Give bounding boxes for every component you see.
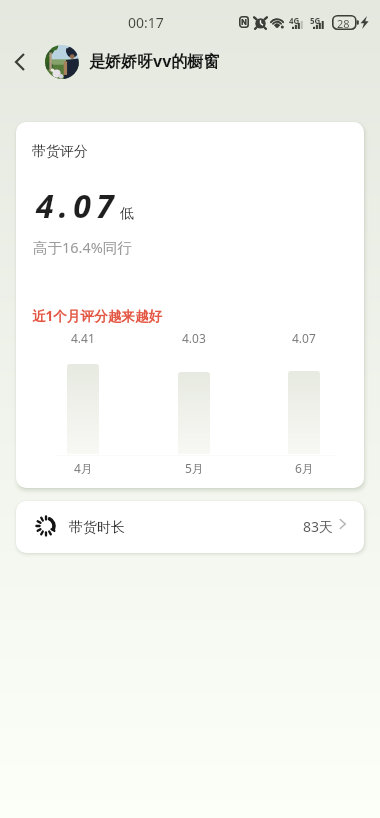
staticText: 28 xyxy=(337,16,350,31)
staticText: 4.07 xyxy=(36,184,119,228)
staticText: 带货评分 xyxy=(32,143,88,161)
staticText: 近1个月评分越来越好 xyxy=(32,306,163,325)
staticText: 4.07 xyxy=(292,330,316,346)
staticText: 00:17 xyxy=(128,13,164,32)
staticText: 83天 xyxy=(303,517,334,536)
button[interactable]: 带货时长 xyxy=(16,501,364,553)
staticText: 是娇娇呀vv的橱窗 xyxy=(89,50,220,72)
staticText: 4G xyxy=(289,15,300,26)
staticText: 高于16.4%同行 xyxy=(33,237,132,257)
staticText: 低 xyxy=(120,205,134,223)
staticText: 5月 xyxy=(185,460,204,476)
staticText: 4月 xyxy=(74,460,93,476)
staticText: 6月 xyxy=(295,460,314,476)
button[interactable]: Back xyxy=(6,48,34,76)
staticText: 4.41 xyxy=(71,330,95,346)
staticText: 4.03 xyxy=(182,330,206,346)
staticText: 带货时长 xyxy=(69,519,125,537)
button[interactable]: Profile avatar xyxy=(45,45,79,79)
staticText: 5G xyxy=(310,15,321,26)
